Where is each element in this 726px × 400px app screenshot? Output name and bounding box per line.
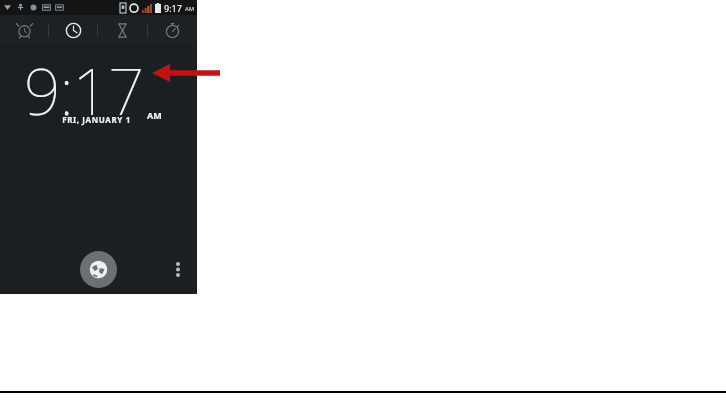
button[interactable]: World clock — [80, 251, 117, 288]
button[interactable]: Alarm — [0, 15, 48, 45]
staticText: AM — [147, 109, 162, 121]
button[interactable]: More options — [166, 253, 190, 285]
staticText: 9:17 — [24, 47, 144, 134]
button[interactable]: Timer — [98, 15, 147, 45]
staticText: AM — [185, 5, 195, 13]
button[interactable]: Clock — [49, 15, 97, 45]
staticText: FRI, JANUARY 1 — [62, 114, 131, 125]
button[interactable]: Stopwatch — [148, 15, 197, 45]
staticText: 9:17 — [164, 2, 182, 14]
